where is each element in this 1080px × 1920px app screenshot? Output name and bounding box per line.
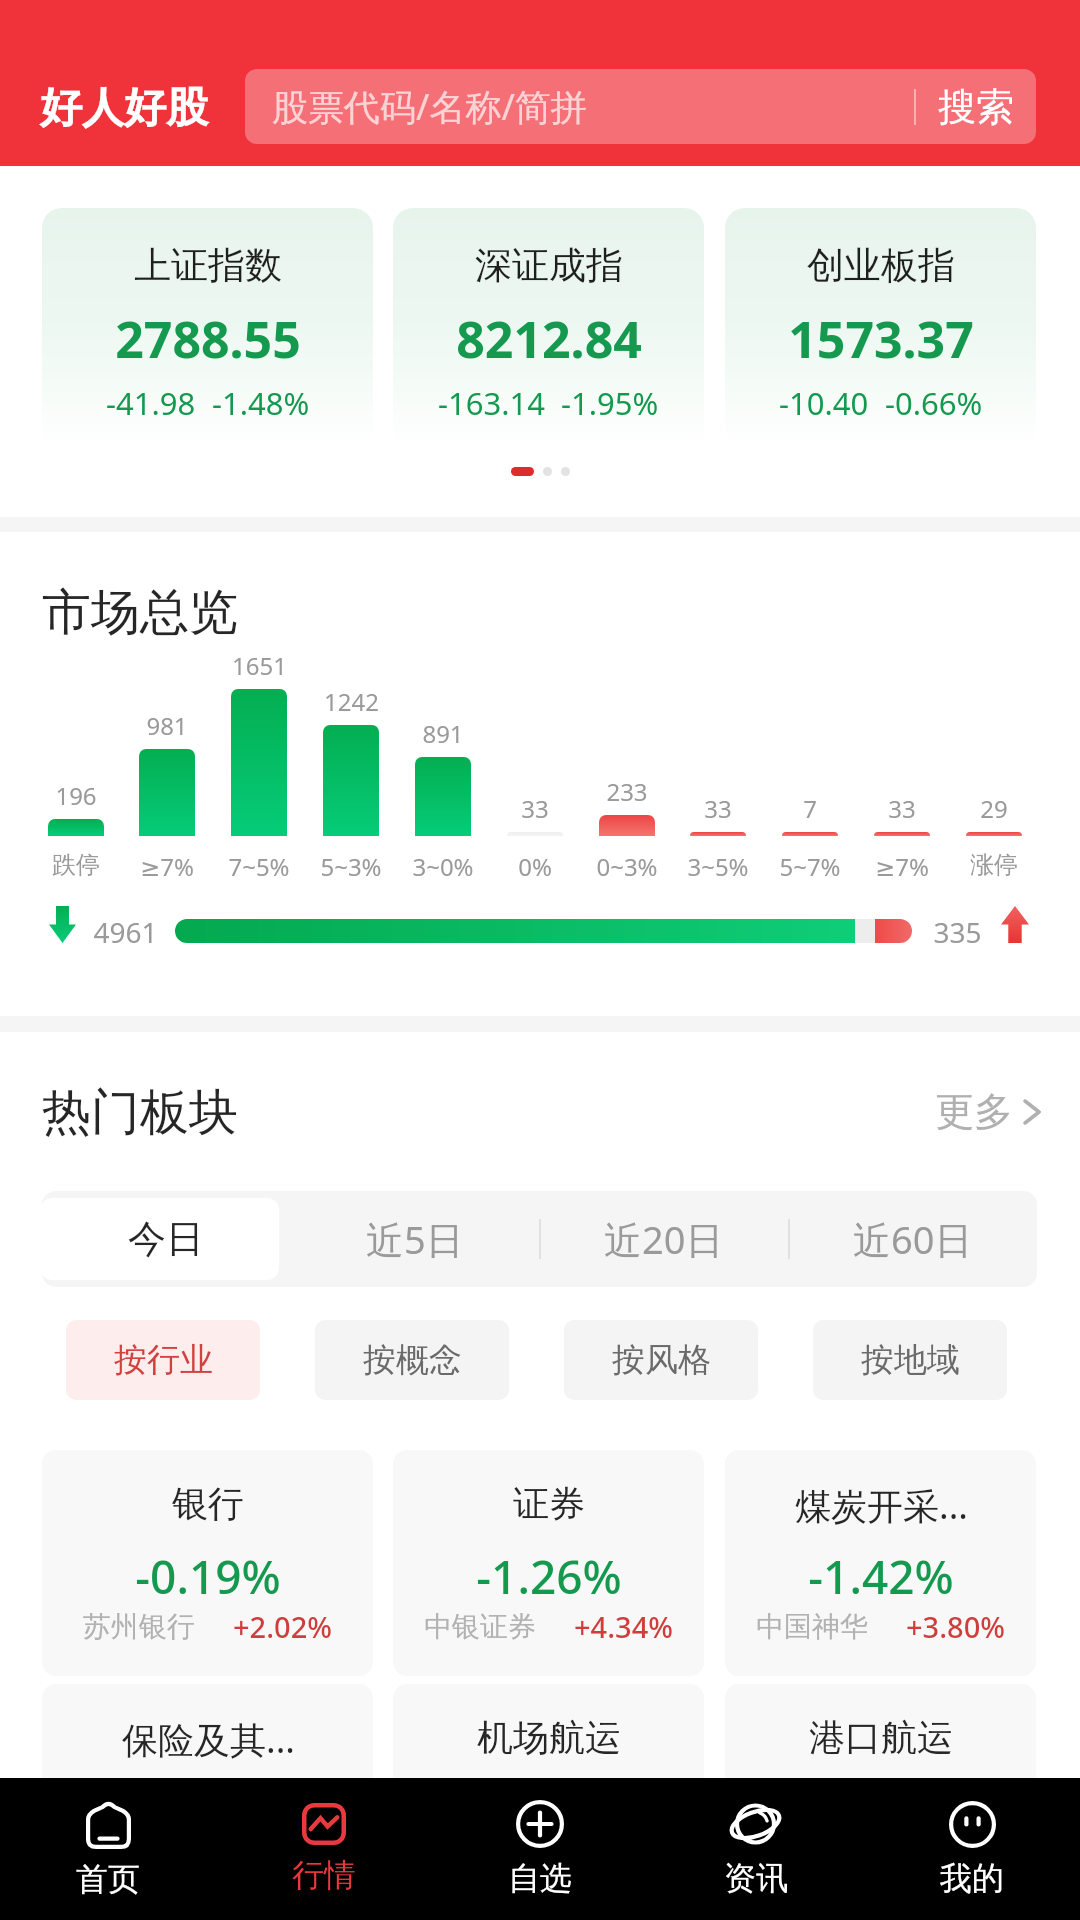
button[interactable] [393, 208, 704, 447]
button[interactable]: 按概念 [315, 1320, 509, 1400]
staticText: 7 [803, 792, 817, 825]
staticText: 资讯 [724, 1858, 788, 1898]
button[interactable]: 近60日 [788, 1191, 1037, 1287]
staticText: 跌停 [52, 850, 100, 880]
staticText: 证券 [513, 1481, 585, 1526]
staticText: 苏州银行 [83, 1609, 195, 1644]
staticText: 0~3% [596, 850, 658, 883]
staticText: 0% [518, 850, 552, 883]
other: Advancers [1001, 906, 1029, 943]
staticText: 深证成指 [475, 242, 623, 289]
staticText: 近5日 [366, 1213, 464, 1265]
staticText: 2788.55 [115, 305, 301, 373]
staticText: 33 [888, 792, 916, 825]
button[interactable]: 近20日 [539, 1191, 788, 1287]
button[interactable]: 更多 [935, 1087, 1065, 1136]
staticText: 29 [980, 792, 1008, 825]
button[interactable]: 今日 [42, 1191, 290, 1287]
staticText: 335 [933, 913, 982, 951]
staticText: 行情 [292, 1855, 356, 1895]
staticText: 港口航运 [809, 1715, 953, 1760]
staticText: 近60日 [853, 1213, 973, 1265]
button[interactable]: 股票代码/名称/简拼 [245, 69, 1036, 144]
button[interactable]: 按地域 [813, 1320, 1007, 1400]
button[interactable] [42, 1684, 373, 1910]
button[interactable]: News [648, 1778, 864, 1920]
staticText: -0.66% [885, 382, 983, 424]
staticText: -10.40 [779, 382, 869, 424]
button[interactable] [725, 1450, 1036, 1676]
staticText: 中银证券 [424, 1609, 536, 1644]
staticText: 市场总览 [42, 582, 238, 644]
staticText: 1651 [232, 649, 287, 682]
button[interactable]: 按风格 [564, 1320, 758, 1400]
staticText: 煤炭开采... [795, 1481, 968, 1530]
button[interactable] [42, 208, 373, 447]
staticText: 中国神华 [756, 1609, 868, 1644]
staticText: 按概念 [363, 1339, 462, 1381]
button[interactable]: Watchlist [432, 1778, 648, 1920]
staticText: 按地域 [861, 1339, 960, 1381]
staticText: 3~5% [687, 850, 749, 883]
staticText: 5~3% [320, 850, 382, 883]
button[interactable]: Profile [864, 1778, 1080, 1920]
staticText: 近20日 [604, 1213, 724, 1265]
staticText: 股票代码/名称/简拼 [272, 82, 587, 131]
staticText: 1242 [324, 685, 379, 718]
button[interactable] [725, 208, 1036, 447]
button[interactable] [42, 1450, 373, 1676]
other: Decliners [49, 906, 76, 943]
staticText: +2.02% [233, 1607, 332, 1646]
staticText: 我的 [940, 1858, 1004, 1898]
staticText: 33 [521, 792, 549, 825]
staticText: 8212.84 [456, 305, 642, 373]
button[interactable]: Markets [216, 1778, 432, 1920]
staticText: 银行 [172, 1481, 244, 1526]
button[interactable]: 近5日 [290, 1191, 539, 1287]
staticText: 233 [606, 775, 648, 808]
staticText: 7~5% [228, 850, 290, 883]
button[interactable]: Home [0, 1778, 216, 1920]
button[interactable] [725, 1684, 1036, 1910]
staticText: +4.34% [574, 1607, 673, 1646]
staticText: 首页 [76, 1859, 140, 1899]
staticText: 涨停 [970, 850, 1018, 880]
button[interactable]: 按行业 [66, 1320, 260, 1400]
staticText: -1.95% [561, 382, 659, 424]
staticText: -1.26% [476, 1545, 622, 1608]
staticText: 1573.37 [788, 305, 974, 373]
staticText: 搜索 [938, 83, 1014, 131]
staticText: 上证指数 [134, 242, 282, 289]
staticText: 891 [422, 717, 464, 750]
staticText: 196 [55, 779, 97, 812]
staticText: 4961 [93, 913, 158, 951]
staticText: ≥7% [875, 850, 929, 883]
staticText: -1.42% [808, 1545, 954, 1608]
staticText: 981 [146, 709, 188, 742]
staticText: 今日 [128, 1215, 204, 1263]
staticText: -41.98 [106, 382, 196, 424]
staticText: -0.19% [135, 1545, 281, 1608]
staticText: 33 [704, 792, 732, 825]
staticText: -163.14 [438, 382, 545, 424]
button[interactable] [393, 1450, 704, 1676]
staticText: 更多 [935, 1087, 1013, 1136]
staticText: -1.48% [212, 382, 310, 424]
staticText: 好人好股 [40, 82, 208, 135]
staticText: 创业板指 [807, 242, 955, 289]
button[interactable] [393, 1684, 704, 1910]
staticText: 按风格 [612, 1339, 711, 1381]
staticText: 机场航运 [477, 1715, 621, 1760]
staticText: +3.80% [906, 1607, 1005, 1646]
staticText: 热门板块 [42, 1082, 238, 1144]
staticText: ≥7% [140, 850, 194, 883]
staticText: 5~7% [779, 850, 841, 883]
staticText: 3~0% [412, 850, 474, 883]
staticText: 按行业 [114, 1339, 213, 1381]
staticText: 保险及其... [122, 1715, 295, 1764]
staticText: 自选 [508, 1858, 572, 1898]
